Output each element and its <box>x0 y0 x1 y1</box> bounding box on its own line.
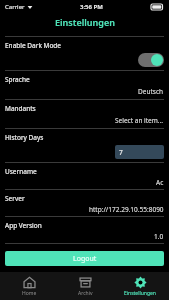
staticText: 3:56 PM <box>80 3 103 11</box>
staticText: Select an item... <box>115 116 164 125</box>
staticText: 1.0 <box>154 232 164 241</box>
staticText: Einstellungen <box>124 290 156 297</box>
staticText: Ac <box>156 178 164 187</box>
staticText: 7 <box>119 148 123 157</box>
button[interactable]: Username <box>0 163 169 189</box>
staticText: Sprache <box>5 75 30 84</box>
staticText: Carrier <box>5 3 25 11</box>
staticText: Archiv <box>78 290 93 297</box>
staticText: http://172.29.10.55:8090 <box>89 205 164 214</box>
button[interactable]: Enable Dark Mode toggle <box>138 53 164 67</box>
staticText: Logout <box>73 254 97 264</box>
staticText: Mandants <box>5 104 36 113</box>
button[interactable]: Enable Dark Mode <box>0 37 169 70</box>
staticText: Einstellungen <box>55 16 115 28</box>
button[interactable]: Archiv <box>58 272 112 300</box>
staticText: Home <box>22 290 37 297</box>
staticText: History Days <box>5 133 44 142</box>
staticText: Deutsch <box>138 87 164 96</box>
staticText: Username <box>5 167 37 176</box>
staticText: Enable Dark Mode <box>5 41 62 50</box>
staticText: App Version <box>5 221 42 230</box>
staticText: Server <box>5 194 25 203</box>
button[interactable]: Server <box>0 190 169 216</box>
button[interactable]: Einstellungen <box>113 272 167 300</box>
button[interactable]: 7 <box>115 145 164 159</box>
button[interactable]: Mandants <box>0 100 169 128</box>
button[interactable]: Logout <box>5 251 164 266</box>
button[interactable]: Sprache <box>0 71 169 99</box>
button[interactable]: App Version <box>0 217 169 243</box>
button[interactable]: Home <box>2 272 56 300</box>
button[interactable]: History Days <box>0 129 169 162</box>
